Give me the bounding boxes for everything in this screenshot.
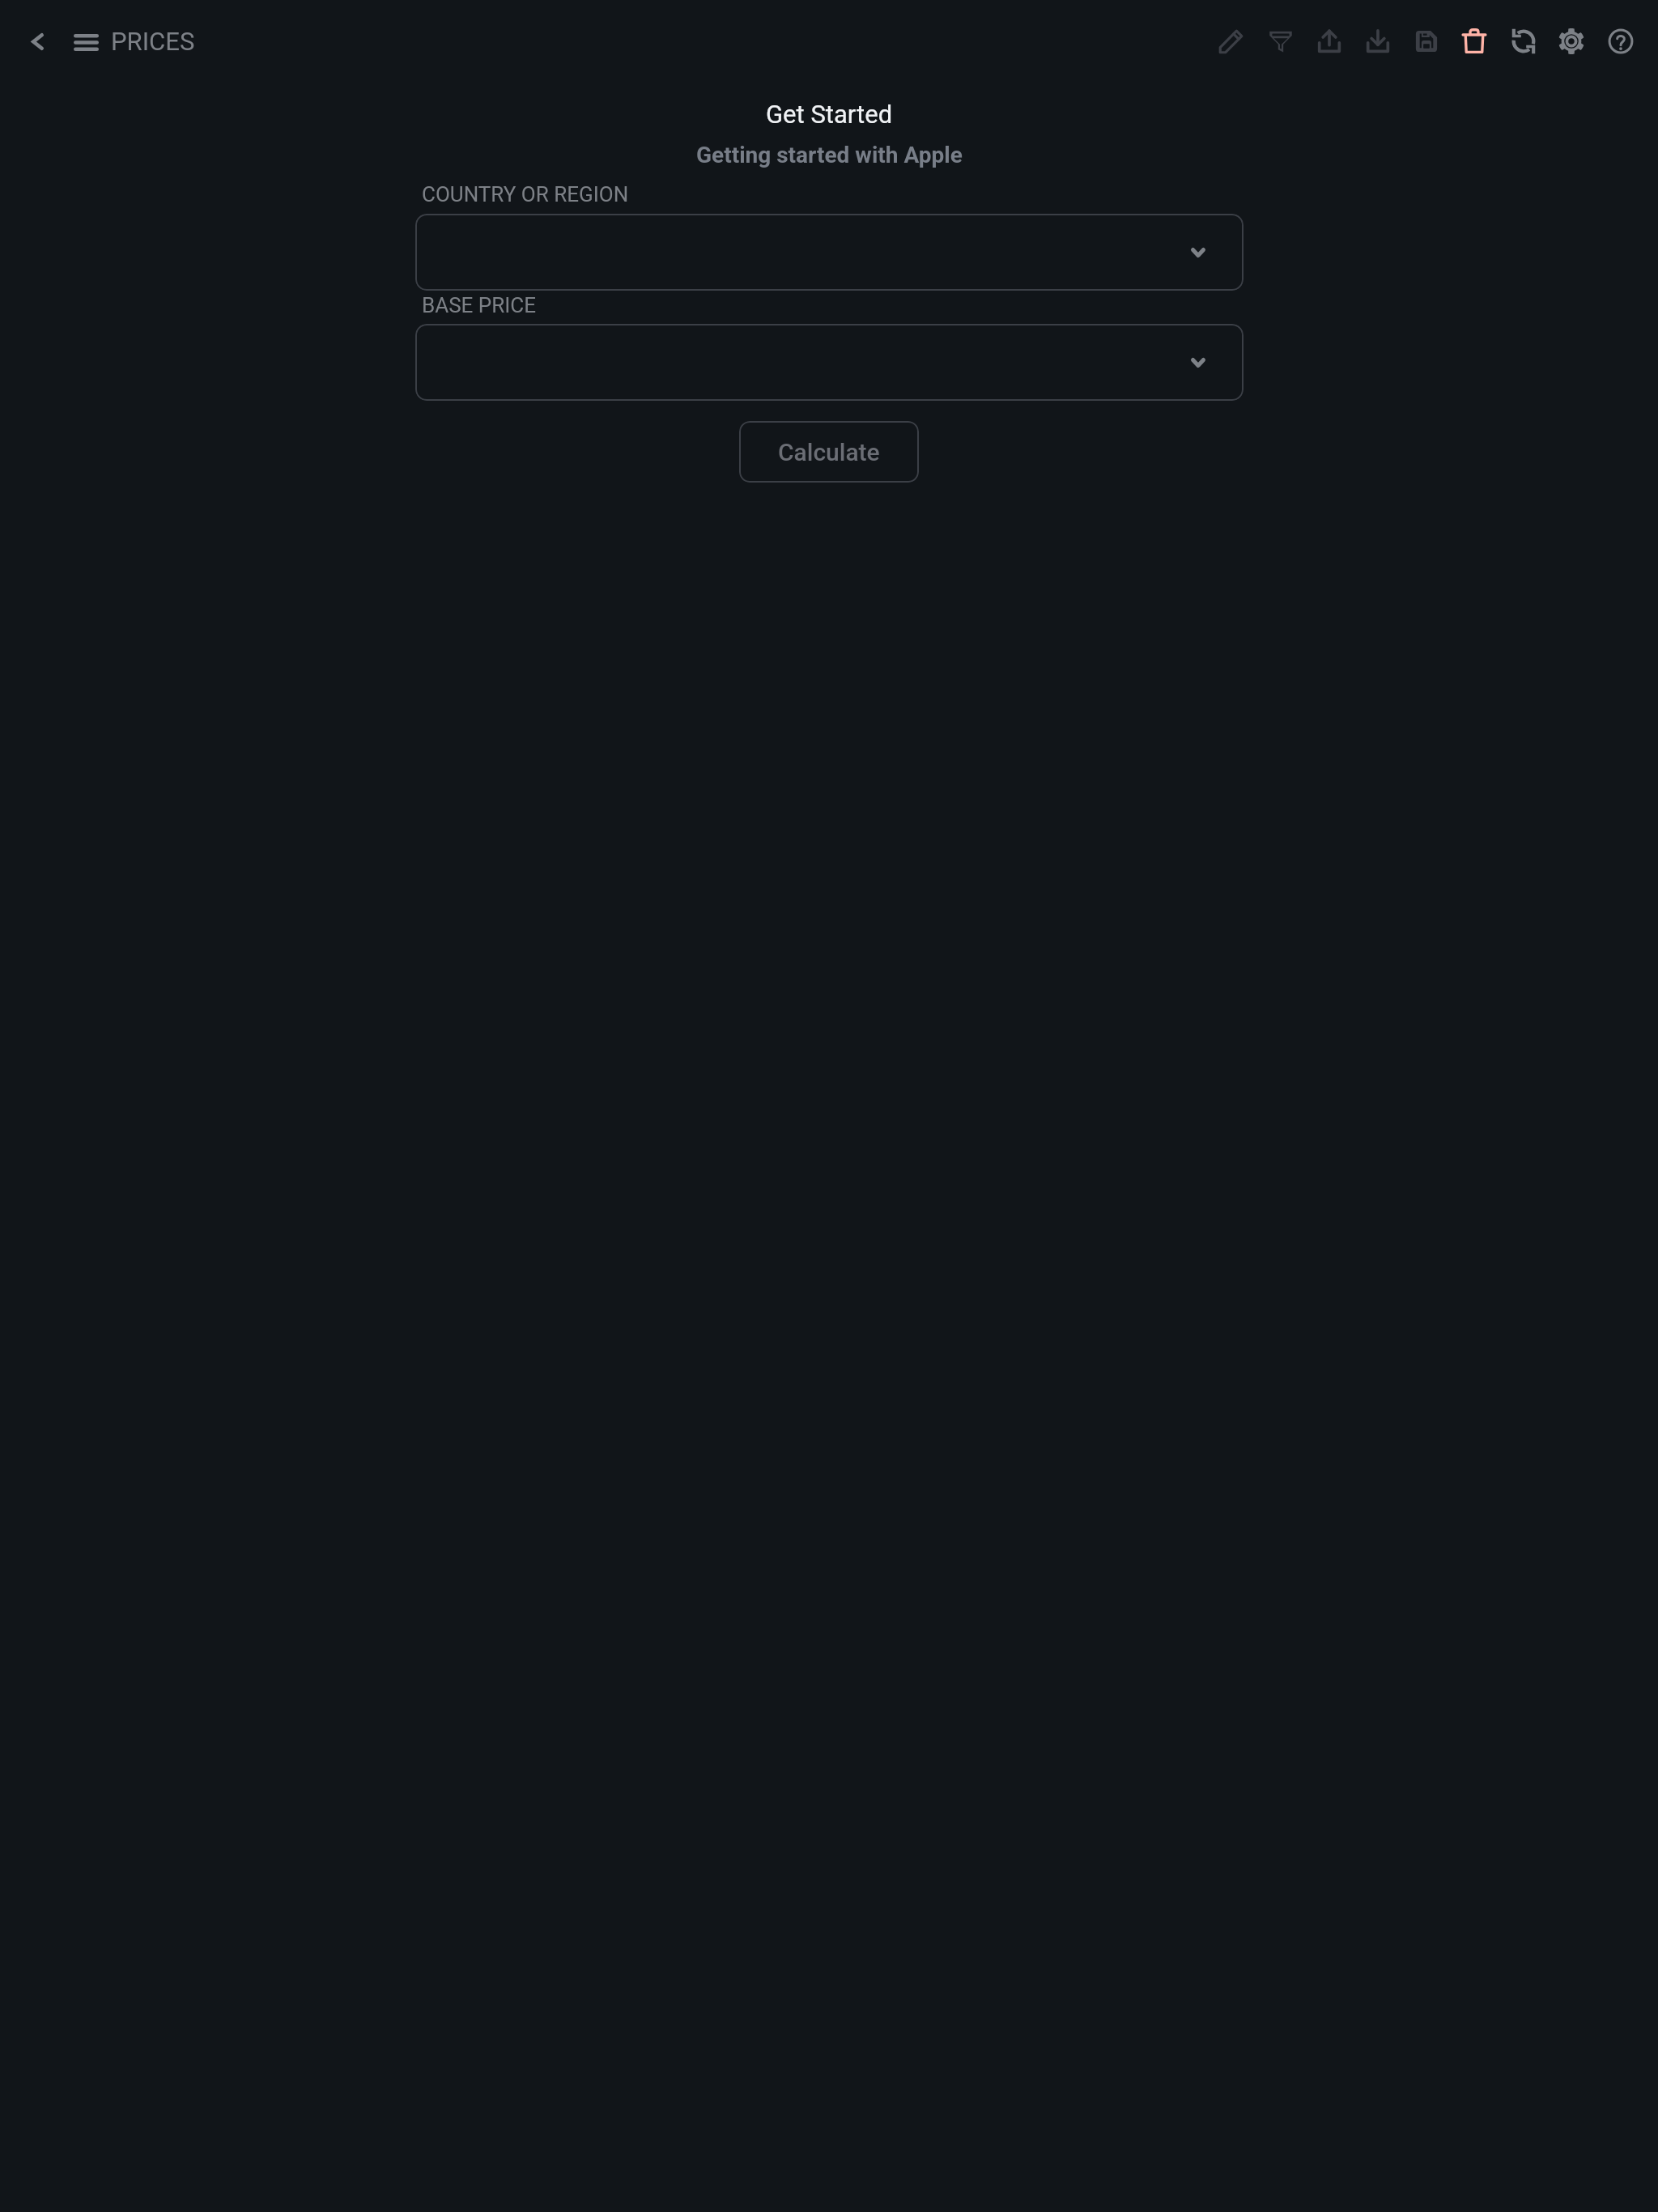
- staticText: COUNTRY OR REGION: [422, 182, 629, 206]
- staticText: BASE PRICE: [422, 293, 537, 317]
- button[interactable]: [415, 214, 1243, 291]
- staticText: Get Started: [766, 100, 893, 129]
- button[interactable]: Edit: [1209, 19, 1253, 63]
- staticText: Calculate: [778, 438, 880, 466]
- button[interactable]: Save: [1405, 19, 1448, 63]
- button[interactable]: Calculate: [739, 421, 919, 483]
- button[interactable]: Download: [1356, 19, 1400, 63]
- button[interactable]: Settings: [1550, 19, 1593, 63]
- button[interactable]: Menu: [65, 21, 107, 63]
- button[interactable]: Refresh: [1502, 19, 1545, 63]
- staticText: PRICES: [111, 27, 195, 56]
- button[interactable]: Help: [1599, 19, 1643, 63]
- staticText: Getting started with Apple: [696, 142, 963, 168]
- button[interactable]: Back: [16, 20, 58, 62]
- button[interactable]: Filter: [1259, 19, 1303, 63]
- button[interactable]: [415, 324, 1243, 401]
- button[interactable]: Upload: [1307, 19, 1351, 63]
- button[interactable]: Delete: [1452, 19, 1496, 63]
